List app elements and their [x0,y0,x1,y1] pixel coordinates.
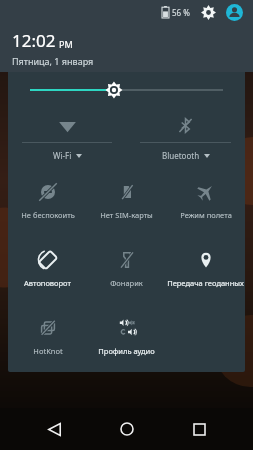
staticText: PM [59,38,73,50]
staticText: Нет SIM-карты [100,210,153,220]
button[interactable]: Нет SIM-карты [87,170,166,238]
button[interactable]: Bluetooth [126,108,245,168]
button[interactable]: Автоповорот [8,238,87,306]
button[interactable]: Settings [199,3,218,22]
button[interactable]: Recent apps [180,410,218,448]
button[interactable]: Профиль аудио [87,306,166,366]
button[interactable]: Back [35,410,73,448]
staticText: 12:02 [12,29,56,52]
button[interactable]: Wi-Fi [8,108,126,168]
button[interactable]: HotKnot [8,306,87,366]
staticText: Передача геоданных [167,278,244,288]
button[interactable]: User profile [224,2,244,22]
staticText: Фонарик [110,278,143,288]
staticText: Bluetooth [162,150,200,161]
staticText: Профиль аудио [98,346,155,356]
button[interactable]: Home [108,410,146,448]
staticText: Пятница, 1 января [12,55,94,67]
staticText: 56 % [172,7,190,18]
staticText: Автоповорот [24,278,71,288]
button[interactable]: Brightness slider [8,72,245,108]
staticText: Режим полета [180,210,232,220]
staticText: HotKnot [33,346,63,356]
button[interactable]: Фонарик [87,238,166,306]
staticText: Wi-Fi [53,150,72,161]
button[interactable]: Режим полета [166,170,245,238]
button[interactable]: Не беспокоить [8,170,87,238]
button[interactable]: Передача геоданных [166,238,245,306]
staticText: Не беспокоить [21,210,75,220]
